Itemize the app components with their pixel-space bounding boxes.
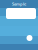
staticText: Sample [12, 1, 26, 7]
